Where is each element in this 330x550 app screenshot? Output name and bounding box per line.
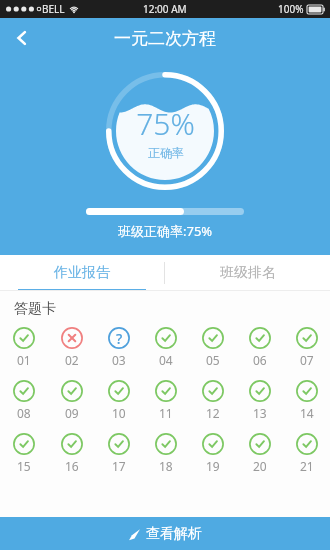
- button[interactable]: Correct: [142, 433, 189, 474]
- staticText: 04: [159, 352, 173, 368]
- button[interactable]: Correct: [0, 327, 48, 368]
- staticText: 100%: [278, 2, 304, 16]
- staticText: 05: [206, 352, 220, 368]
- button[interactable]: Correct: [236, 327, 283, 368]
- other: Correct: [61, 380, 83, 402]
- staticText: 作业报告: [54, 264, 110, 282]
- staticText: 12: [206, 405, 220, 421]
- button[interactable]: Correct: [95, 433, 142, 474]
- other: Correct: [249, 327, 271, 349]
- other: Correct: [13, 433, 35, 455]
- button[interactable]: Back: [0, 18, 44, 58]
- staticText: 班级排名: [220, 264, 276, 282]
- staticText: 02: [65, 352, 79, 368]
- staticText: ?: [116, 329, 123, 348]
- button[interactable]: Correct: [283, 433, 330, 474]
- button[interactable]: Correct: [189, 380, 236, 421]
- staticText: 06: [253, 352, 267, 368]
- other: Incorrect: [61, 327, 83, 349]
- staticText: 20: [253, 458, 267, 474]
- button[interactable]: Correct: [48, 433, 95, 474]
- staticText: 15: [17, 458, 31, 474]
- staticText: 10: [112, 405, 126, 421]
- button[interactable]: Correct: [0, 380, 48, 421]
- other: Correct: [296, 380, 318, 402]
- staticText: 正确率: [148, 145, 184, 160]
- staticText: 13: [253, 405, 267, 421]
- button[interactable]: Correct: [189, 433, 236, 474]
- button[interactable]: Correct: [189, 327, 236, 368]
- button[interactable]: Unanswered: [95, 327, 142, 368]
- other: Correct: [61, 433, 83, 455]
- button[interactable]: Incorrect: [48, 327, 95, 368]
- other: Correct: [155, 433, 177, 455]
- staticText: 班级正确率:75%: [118, 222, 213, 240]
- other: Correct: [296, 327, 318, 349]
- staticText: 答题卡: [14, 300, 56, 318]
- other: Correct: [296, 433, 318, 455]
- other: Correct: [202, 380, 224, 402]
- button[interactable]: Correct: [48, 380, 95, 421]
- button[interactable]: Correct: [236, 380, 283, 421]
- other: Correct: [13, 380, 35, 402]
- staticText: 16: [65, 458, 79, 474]
- button[interactable]: Correct: [283, 327, 330, 368]
- staticText: 一元二次方程: [114, 28, 216, 49]
- other: Correct: [155, 380, 177, 402]
- staticText: 09: [65, 405, 79, 421]
- button[interactable]: Correct: [142, 380, 189, 421]
- staticText: BELL: [42, 2, 65, 16]
- other: Unanswered: [108, 327, 130, 349]
- button[interactable]: 查看解析: [0, 517, 330, 550]
- staticText: 18: [159, 458, 173, 474]
- other: Correct: [13, 327, 35, 349]
- staticText: 08: [17, 405, 31, 421]
- staticText: 01: [17, 352, 31, 368]
- staticText: 75%: [136, 103, 195, 144]
- staticText: 12:00 AM: [143, 2, 187, 16]
- other: Correct: [155, 327, 177, 349]
- other: Correct: [249, 433, 271, 455]
- staticText: 19: [206, 458, 220, 474]
- other: Correct: [108, 433, 130, 455]
- button[interactable]: Correct: [142, 327, 189, 368]
- staticText: 14: [300, 405, 314, 421]
- button[interactable]: Correct: [236, 433, 283, 474]
- staticText: 17: [112, 458, 126, 474]
- staticText: 03: [112, 352, 126, 368]
- other: Correct: [249, 380, 271, 402]
- staticText: 07: [300, 352, 314, 368]
- staticText: 21: [300, 458, 314, 474]
- other: Correct: [202, 327, 224, 349]
- button[interactable]: 作业报告: [0, 255, 164, 291]
- other: Correct: [108, 380, 130, 402]
- staticText: 11: [159, 405, 173, 421]
- staticText: 查看解析: [146, 525, 202, 543]
- button[interactable]: Correct: [95, 380, 142, 421]
- button[interactable]: 班级排名: [165, 255, 330, 291]
- other: Correct: [202, 433, 224, 455]
- button[interactable]: Correct: [0, 433, 48, 474]
- button[interactable]: Correct: [283, 380, 330, 421]
